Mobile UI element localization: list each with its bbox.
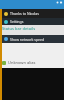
staticText: Status bar details [2, 26, 36, 31]
staticText: Unknown alias [8, 60, 36, 65]
button[interactable]: Show network speed [0, 35, 64, 43]
button[interactable]: Thanks to Nicolas [0, 9, 64, 18]
button[interactable]: Unknown alias [0, 60, 64, 65]
staticText: Settings [10, 19, 24, 24]
staticText: Thanks to Nicolas [10, 11, 39, 16]
button[interactable]: Settings [0, 18, 64, 25]
staticText: Show network speed [10, 37, 45, 42]
